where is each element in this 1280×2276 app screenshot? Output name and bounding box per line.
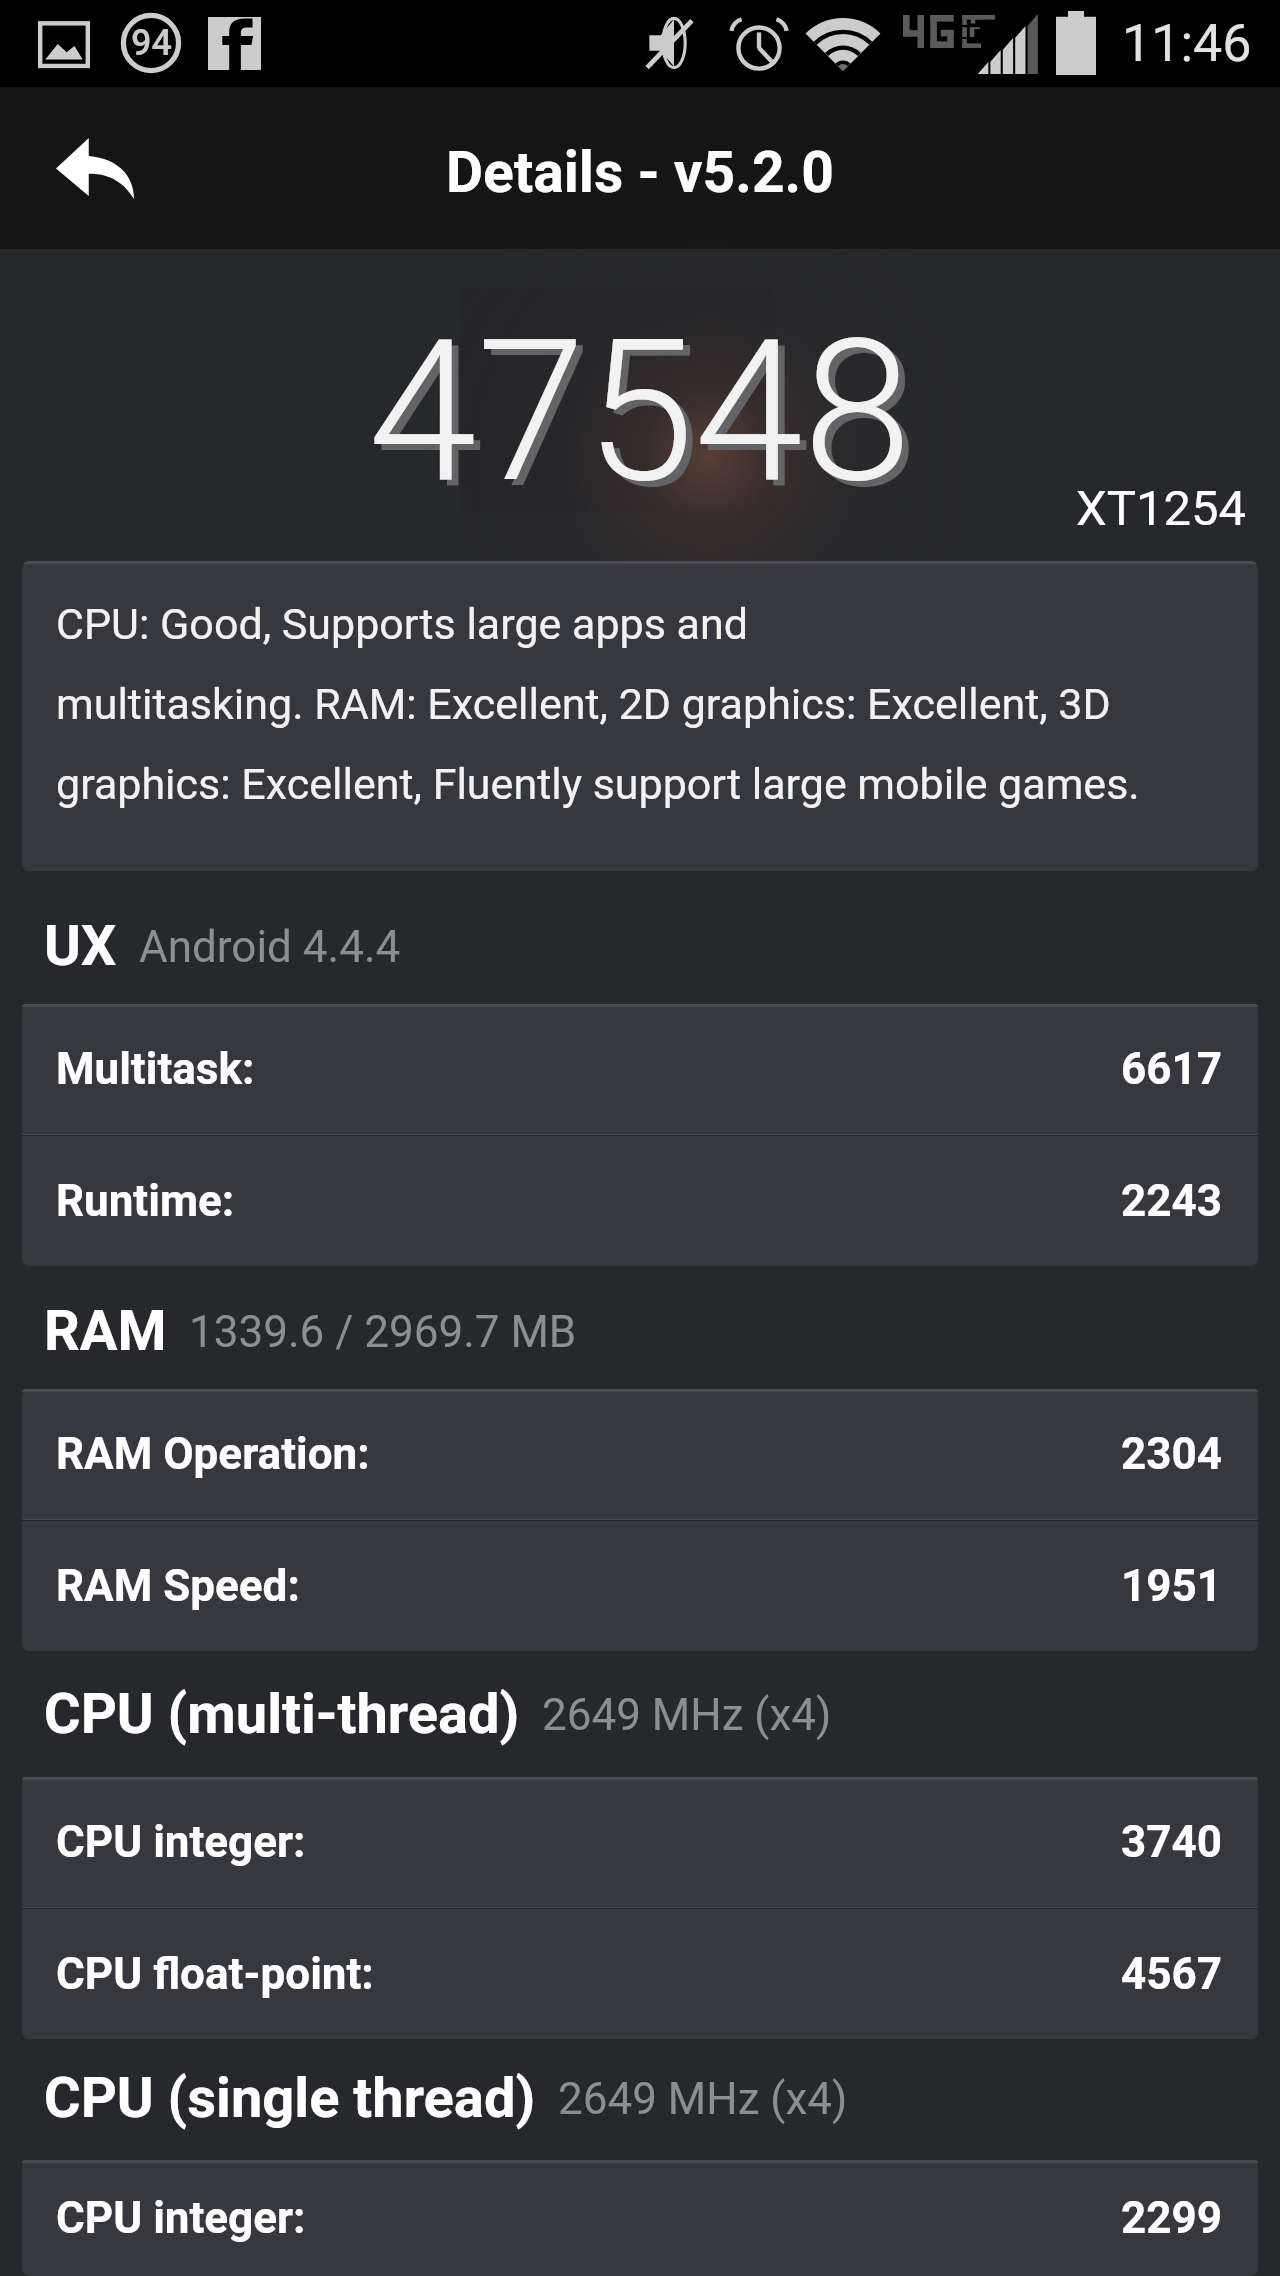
button[interactable]: Back [30, 103, 160, 233]
staticText: CPU float-point: [56, 1948, 374, 2000]
staticText: CPU (single thread) [44, 2065, 536, 2131]
other: Mobile signal [978, 14, 1040, 74]
staticText: XT1254 [1076, 480, 1247, 537]
button[interactable]: Multitask: [22, 1004, 1258, 1134]
other: Wi-Fi [806, 18, 880, 71]
staticText: 2649 MHz (x4) [542, 1689, 832, 1741]
staticText: UX [44, 913, 117, 979]
other: Battery [1056, 11, 1096, 75]
button[interactable]: CPU integer: [22, 2160, 1258, 2276]
staticText: RAM Operation: [56, 1428, 370, 1480]
button[interactable]: RAM Speed: [22, 1521, 1258, 1651]
staticText: 94 [131, 22, 172, 64]
staticText: CPU integer: [56, 2192, 306, 2244]
staticText: 2299 [1121, 2192, 1222, 2244]
staticText: 2243 [1121, 1175, 1222, 1227]
staticText: 2649 MHz (x4) [558, 2073, 848, 2125]
other: Alarm set [730, 15, 788, 73]
staticText: 1951 [1121, 1560, 1222, 1612]
staticText: 6617 [1121, 1043, 1222, 1095]
staticText: 11:46 [1122, 13, 1252, 74]
other: Silent mode [646, 15, 702, 71]
button[interactable]: CPU float-point: [22, 1909, 1258, 2039]
button[interactable]: RAM Operation: [22, 1389, 1258, 1519]
staticText: Details - v5.2.0 [446, 139, 834, 206]
staticText: 4567 [1121, 1948, 1222, 2000]
staticText: CPU (multi-thread) [44, 1681, 520, 1747]
staticText: 47548 [368, 297, 912, 527]
button[interactable]: CPU: Good, Supports large apps and multi… [22, 561, 1258, 871]
staticText: RAM [44, 1298, 167, 1364]
staticText: 1339.6 / 2969.7 MB [189, 1306, 577, 1358]
staticText: CPU integer: [56, 1816, 306, 1868]
staticText: RAM Speed: [56, 1560, 300, 1612]
staticText: Multitask: [56, 1043, 255, 1095]
staticText: 47548 [375, 303, 919, 533]
staticText: Android 4.4.4 [139, 921, 401, 973]
button[interactable]: CPU integer: [22, 1777, 1258, 1907]
staticText: CPU: Good, Supports large apps and multi… [56, 599, 1140, 810]
staticText: 2304 [1121, 1428, 1222, 1480]
button[interactable]: Runtime: [22, 1136, 1258, 1266]
staticText: Runtime: [56, 1175, 235, 1227]
staticText: 3740 [1121, 1816, 1222, 1868]
